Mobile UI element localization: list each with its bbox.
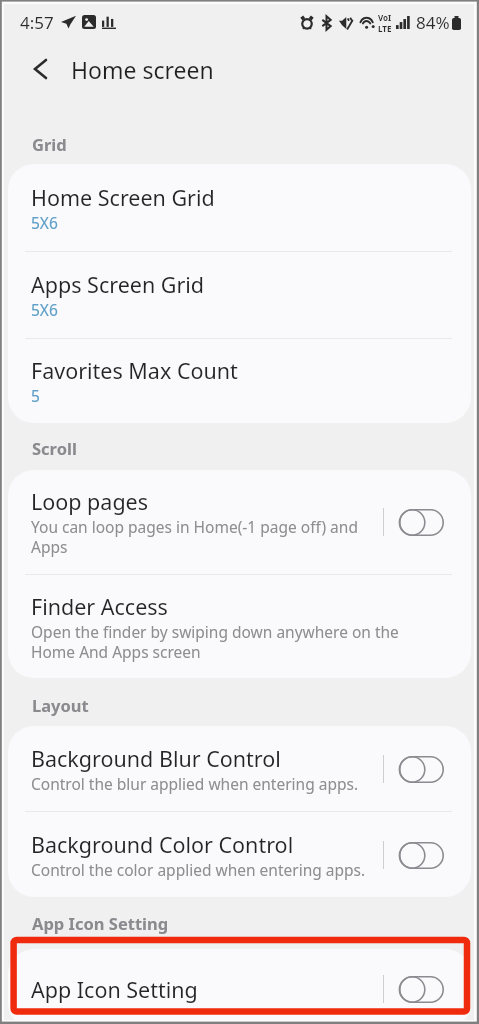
staticText: Favorites Max Count — [31, 356, 238, 385]
button[interactable]: Toggle switch — [399, 976, 444, 1003]
button[interactable]: Home Screen Grid — [8, 164, 471, 251]
staticText: Layout — [32, 694, 89, 716]
button[interactable]: Toggle switch — [399, 842, 444, 869]
staticText: Home Screen Grid — [31, 183, 215, 212]
staticText: Loop pages — [31, 487, 149, 516]
staticText: Background Color Control — [31, 830, 294, 859]
staticText: App Icon Setting — [31, 975, 198, 1004]
staticText: Finder Access — [31, 592, 168, 621]
staticText: Control the color applied when entering … — [31, 859, 366, 880]
button[interactable]: Background Blur Control — [8, 726, 471, 811]
staticText: Background Blur Control — [31, 744, 281, 773]
button[interactable]: Apps Screen Grid — [8, 252, 471, 338]
button[interactable]: Favorites Max Count — [8, 339, 471, 423]
staticText: Control the blur applied when entering a… — [31, 773, 359, 794]
staticText: Home screen — [71, 54, 214, 85]
button[interactable]: Loop pages — [8, 470, 471, 574]
staticText: Scroll — [32, 437, 77, 459]
staticText: Open the finder by swiping down anywhere… — [31, 621, 407, 662]
button[interactable]: Toggle switch — [399, 509, 444, 536]
staticText: 5X6 — [31, 299, 58, 320]
button[interactable]: App Icon Setting — [8, 949, 471, 1024]
button[interactable]: Back — [22, 51, 58, 87]
staticText: Grid — [32, 133, 67, 155]
staticText: App Icon Setting — [32, 912, 169, 934]
staticText: VoI — [378, 12, 392, 23]
staticText: 4:57 — [20, 11, 54, 34]
button[interactable]: Toggle switch — [399, 756, 444, 783]
staticText: 84% — [416, 11, 450, 34]
staticText: Apps Screen Grid — [31, 270, 205, 299]
staticText: LTE — [378, 23, 392, 34]
staticText: 5X6 — [31, 212, 58, 233]
button[interactable]: Background Color Control — [8, 812, 471, 897]
button[interactable]: Finder Access — [8, 575, 471, 678]
staticText: 5 — [31, 385, 40, 406]
staticText: You can loop pages in Home(-1 page off) … — [31, 516, 367, 557]
